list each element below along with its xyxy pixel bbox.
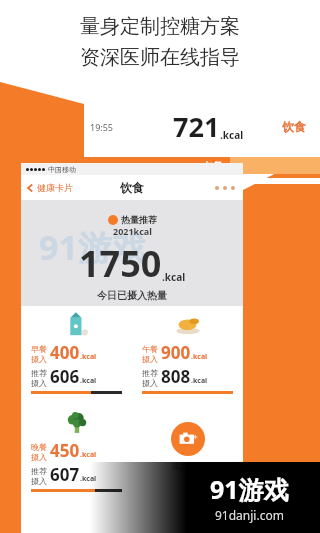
staticText: 721 — [173, 108, 220, 145]
button[interactable]: Add food photo — [171, 422, 205, 471]
staticText: 推荐 — [31, 368, 47, 378]
staticText: 607 — [50, 463, 80, 486]
staticText: 808 — [161, 365, 191, 388]
staticText: 早餐 — [31, 344, 47, 354]
staticText: 91游戏 — [39, 224, 146, 270]
staticText: .kcal — [220, 128, 244, 142]
staticText: 摄入 — [31, 354, 47, 364]
button[interactable]: 健康卡片 — [25, 182, 73, 193]
button[interactable]: 早餐 — [21, 306, 132, 404]
staticText: 2021kcal — [113, 225, 152, 237]
staticText: 摄入 — [142, 354, 158, 364]
button[interactable]: 晚餐 — [21, 404, 132, 502]
staticText: 400 — [50, 341, 80, 364]
button[interactable]: 午餐 — [132, 306, 243, 404]
staticText: .kcal — [191, 376, 208, 386]
button[interactable]: More options — [215, 186, 235, 190]
staticText: 450 — [50, 439, 80, 462]
staticText: 热量推荐 — [121, 214, 157, 225]
staticText: .kcal — [80, 376, 97, 386]
staticText: 饮食 — [282, 119, 306, 134]
staticText: 摄入 — [142, 378, 158, 388]
staticText: 中国移动 — [48, 165, 76, 174]
staticText: 推荐 — [142, 368, 158, 378]
button[interactable]: 午餐 — [84, 157, 320, 174]
staticText: 午餐 — [142, 344, 158, 354]
staticText: 1750 — [79, 239, 162, 288]
staticText: 19:55 — [90, 121, 114, 133]
staticText: 摄入 — [31, 378, 47, 388]
staticText: 饮食 — [120, 180, 144, 195]
staticText: 900 — [161, 341, 191, 364]
staticText: 健康卡片 — [37, 182, 73, 193]
staticText: 资深医师在线指导 — [80, 45, 240, 70]
staticText: 今日已摄入热量 — [97, 289, 167, 302]
staticText: 量身定制控糖方案 — [80, 14, 240, 39]
staticText: 606 — [50, 365, 80, 388]
staticText: 晚餐 — [31, 442, 47, 452]
button[interactable]: 19:55 — [84, 98, 320, 155]
staticText: 推荐 — [31, 466, 47, 476]
staticText: 午餐 — [204, 160, 222, 171]
staticText: .kcal — [80, 352, 97, 362]
staticText: .kcal — [191, 352, 208, 362]
staticText: 添加饮食 — [172, 461, 204, 471]
staticText: 摄入 — [31, 476, 47, 486]
staticText: 91游戏 — [210, 472, 289, 506]
staticText: .kcal — [162, 270, 186, 284]
staticText: .kcal — [80, 450, 97, 460]
staticText: 摄入 — [31, 452, 47, 462]
staticText: 91danji.com — [215, 507, 284, 523]
staticText: .kcal — [80, 474, 97, 484]
